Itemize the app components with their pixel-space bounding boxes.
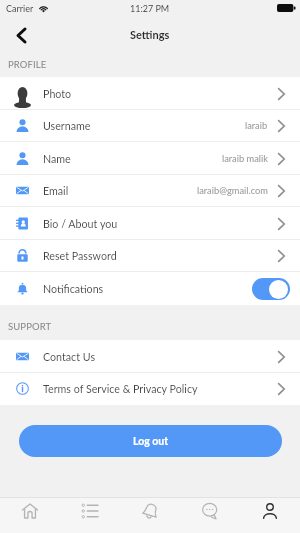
button[interactable]: Bio / About you xyxy=(0,207,300,240)
staticText: Name xyxy=(43,152,71,165)
button[interactable]: Profile xyxy=(240,498,300,533)
button[interactable]: Log out xyxy=(19,425,282,457)
button[interactable]: Notifications xyxy=(0,272,300,305)
button[interactable]: Home xyxy=(0,498,60,533)
staticText: Reset Password xyxy=(43,249,117,262)
button[interactable]: Lists xyxy=(60,498,120,533)
staticText: Contact Us xyxy=(43,350,96,363)
button[interactable]: Photo xyxy=(0,77,300,110)
staticText: Log out xyxy=(133,435,169,448)
staticText: Photo xyxy=(43,87,72,100)
staticText: PROFILE xyxy=(8,59,47,70)
staticText: Terms of Service & Privacy Policy xyxy=(43,382,198,395)
staticText: Settings xyxy=(130,28,170,41)
staticText: laraib malik xyxy=(222,153,268,164)
button[interactable]: Messages xyxy=(180,498,240,533)
staticText: Email xyxy=(43,184,69,197)
button[interactable]: Terms of Service & Privacy Policy xyxy=(0,372,300,405)
staticText: Carrier xyxy=(6,3,34,14)
button[interactable]: Alerts xyxy=(120,498,180,533)
staticText: Bio / About you xyxy=(43,217,118,230)
staticText: laraib xyxy=(245,120,268,131)
button[interactable]: Reset Password xyxy=(0,239,300,272)
staticText: Notifications xyxy=(43,282,104,295)
button[interactable]: Username xyxy=(0,109,300,142)
staticText: SUPPORT xyxy=(8,321,52,332)
button[interactable]: Name xyxy=(0,142,300,175)
button[interactable]: Back xyxy=(3,17,39,53)
staticText: Username xyxy=(43,119,91,132)
button[interactable]: Email xyxy=(0,174,300,207)
staticText: 11:27 PM xyxy=(130,3,170,14)
button[interactable]: Contact Us xyxy=(0,340,300,373)
button[interactable]: Notifications toggle xyxy=(252,278,290,300)
staticText: laraib@gmail.com xyxy=(197,185,268,196)
